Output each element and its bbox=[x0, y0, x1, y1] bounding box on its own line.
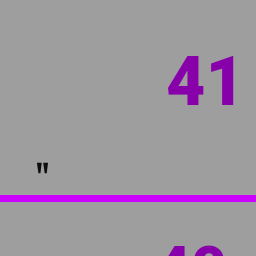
staticText: 40 bbox=[155, 232, 227, 256]
button[interactable]: 40 bbox=[0, 232, 256, 256]
staticText: 41 bbox=[166, 42, 245, 118]
button[interactable]: 41 bbox=[0, 42, 256, 118]
button[interactable]: Seconds bbox=[26, 152, 60, 186]
